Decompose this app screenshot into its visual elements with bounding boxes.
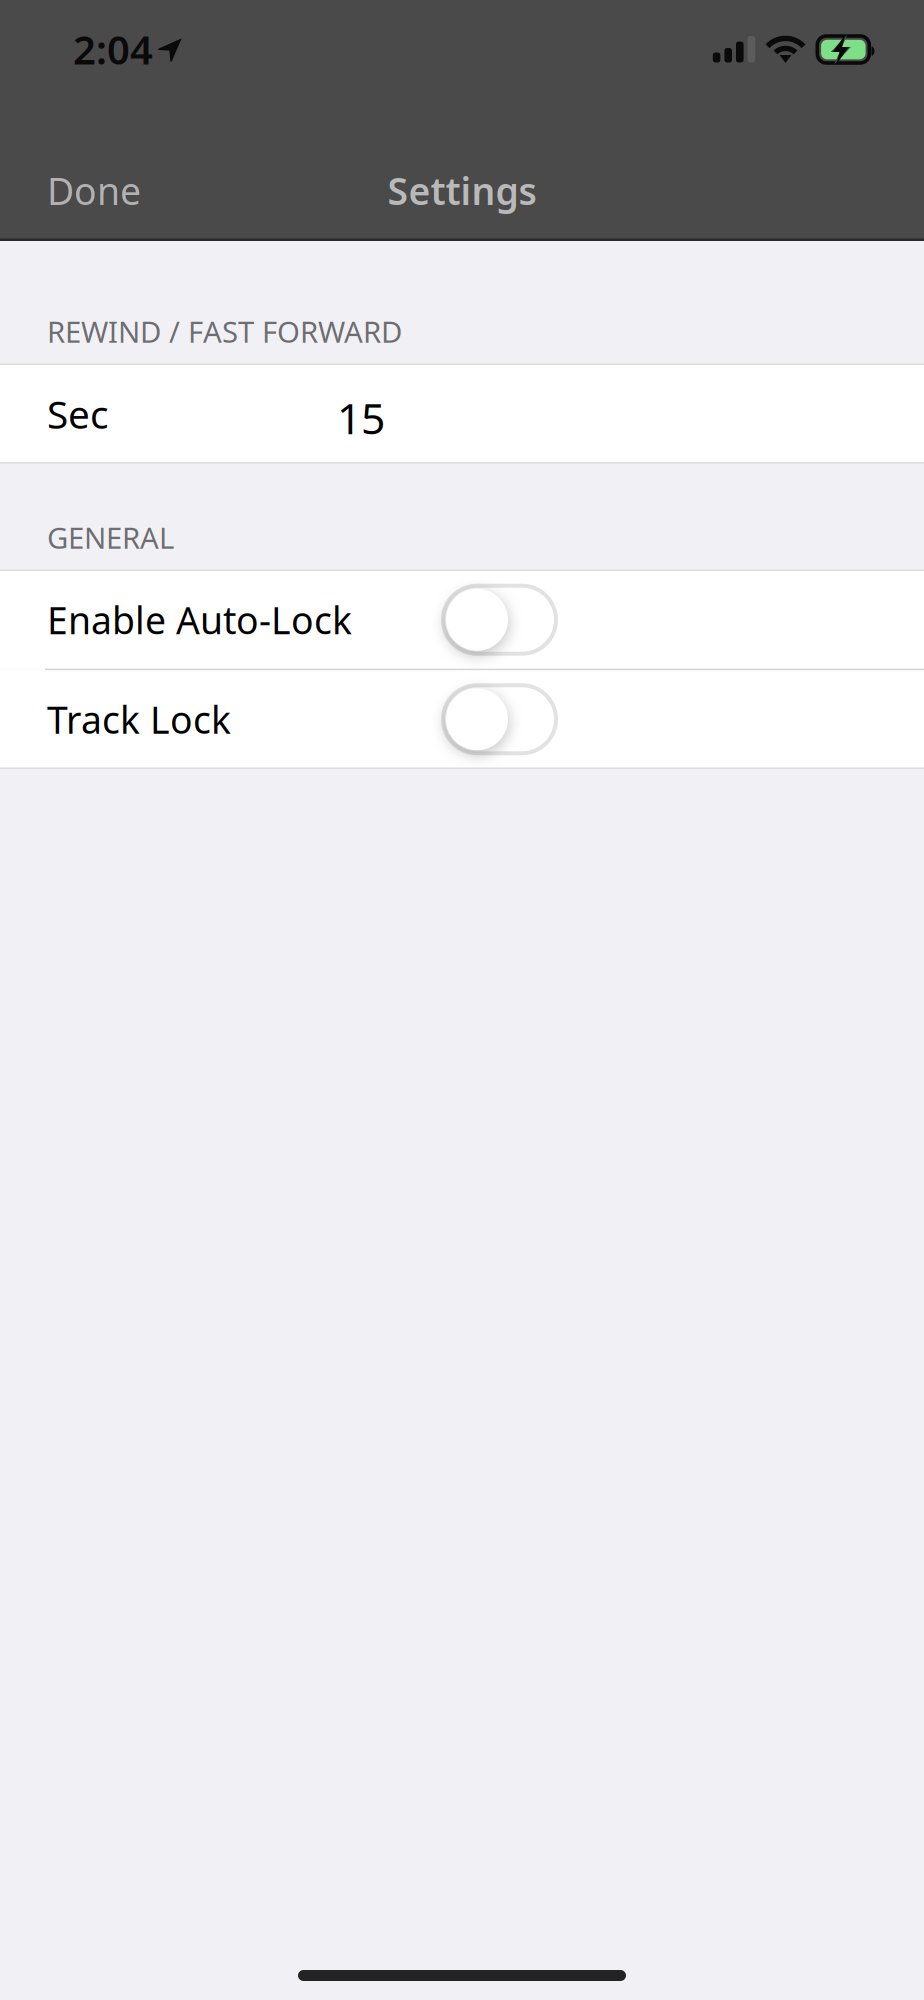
button[interactable]: Sec xyxy=(0,365,924,462)
staticText: Sec xyxy=(47,388,109,439)
button[interactable]: Enable Auto-Lock xyxy=(0,571,924,668)
staticText: Enable Auto-Lock xyxy=(47,595,352,645)
staticText: Track Lock xyxy=(47,694,231,744)
button[interactable]: Done xyxy=(0,135,187,246)
staticText: GENERAL xyxy=(47,518,174,557)
staticText: REWIND / FAST FORWARD xyxy=(47,312,402,351)
staticText: Settings xyxy=(387,166,536,215)
button[interactable]: Track Lock xyxy=(443,685,556,753)
staticText: 2:04 xyxy=(73,22,153,75)
button[interactable]: Enable Auto-Lock xyxy=(443,586,556,654)
button[interactable]: Track Lock xyxy=(0,670,924,768)
staticText: 15 xyxy=(337,389,385,446)
staticText: Done xyxy=(47,166,141,215)
